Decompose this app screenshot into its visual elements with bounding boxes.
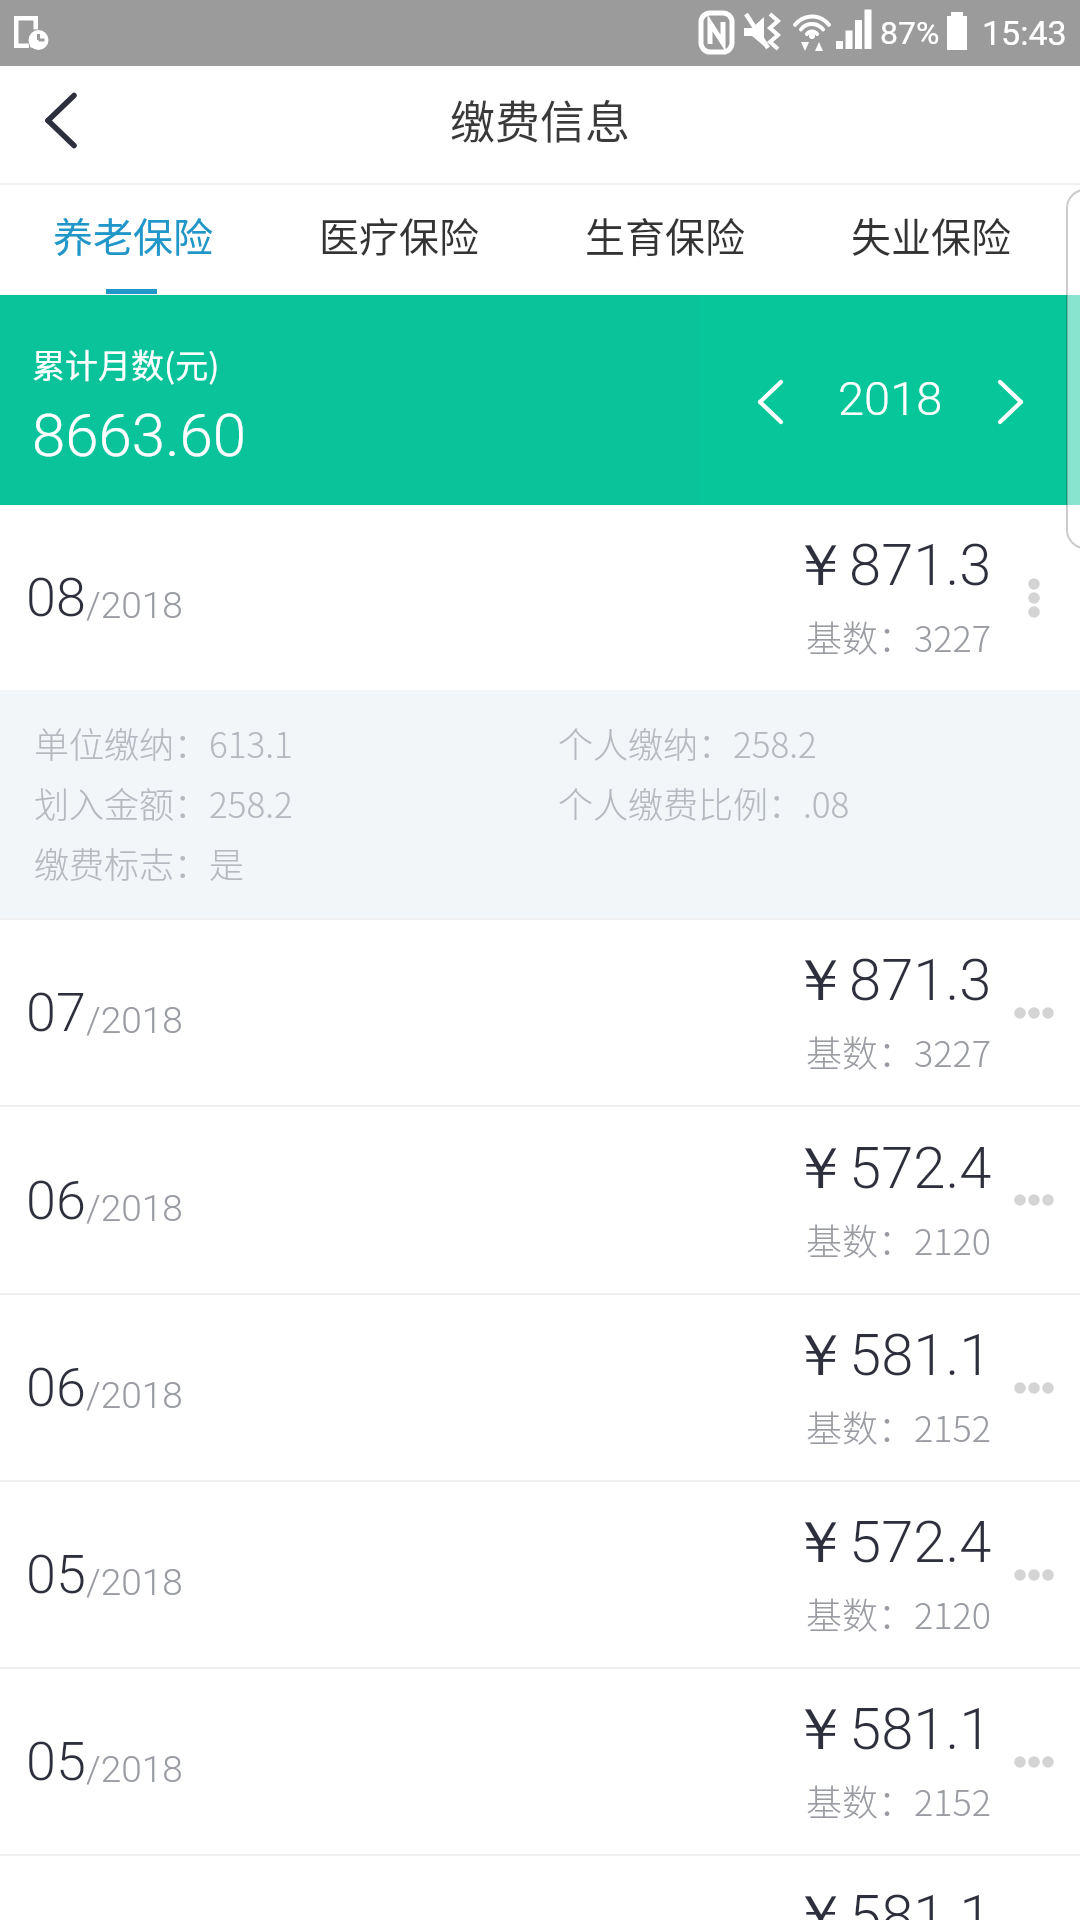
staticText: 05 [26, 1730, 86, 1793]
staticText: 基数：2152 [806, 1400, 992, 1452]
staticText: 基数：3227 [806, 610, 992, 662]
staticText: 8663.60 [32, 400, 247, 470]
staticText: ￥581.1 [791, 1880, 992, 1920]
staticText: 07 [26, 981, 86, 1044]
button[interactable]: More options [1001, 1167, 1067, 1233]
staticText: ￥581.1 [791, 1693, 992, 1766]
button[interactable]: 生育保险 [532, 185, 798, 295]
staticText: /2018 [86, 1374, 183, 1417]
staticText: /2018 [86, 1561, 183, 1604]
button[interactable]: 07 [0, 920, 1080, 1105]
staticText: 基数：3227 [806, 1025, 992, 1077]
staticText: 个人缴纳：258.2 [558, 717, 817, 768]
staticText: ￥871.3 [791, 529, 992, 602]
staticText: 生育保险 [585, 206, 745, 264]
button[interactable]: 05 [0, 1856, 1080, 1920]
staticText: 08 [26, 566, 86, 629]
staticText: 基数：2120 [806, 1213, 992, 1265]
staticText: 06 [26, 1356, 86, 1419]
staticText: 医疗保险 [319, 206, 479, 264]
button[interactable]: 06 [0, 1107, 1080, 1293]
button[interactable]: More options [1001, 1542, 1067, 1608]
button[interactable]: More options [1001, 1729, 1067, 1795]
staticText: ￥572.4 [791, 1132, 992, 1205]
button[interactable]: 医疗保险 [266, 185, 532, 295]
button[interactable]: 05 [0, 1669, 1080, 1854]
staticText: /2018 [86, 1187, 183, 1230]
staticText: 养老保险 [53, 206, 213, 264]
staticText: 累计月数(元) [32, 340, 220, 388]
button[interactable]: More options [1001, 565, 1067, 631]
staticText: 个人缴费比例：.08 [558, 777, 850, 828]
staticText: /2018 [86, 999, 183, 1042]
staticText: 缴费信息 [450, 87, 631, 152]
button[interactable]: Back [0, 66, 124, 183]
staticText: 05 [26, 1543, 86, 1606]
button[interactable]: More options [1001, 1355, 1067, 1421]
staticText: 失业保险 [851, 206, 1011, 264]
staticText: ￥572.4 [791, 1506, 992, 1579]
staticText: 划入金额：258.2 [34, 777, 293, 828]
staticText: 基数：2152 [806, 1774, 992, 1826]
staticText: 单位缴纳：613.1 [34, 717, 293, 768]
staticText: 缴费标志：是 [34, 837, 245, 888]
staticText: ￥581.1 [791, 1319, 992, 1392]
staticText: /2018 [86, 1748, 183, 1791]
staticText: ￥871.3 [791, 944, 992, 1017]
button[interactable]: Previous year [736, 367, 806, 437]
staticText: 06 [26, 1169, 86, 1232]
button[interactable]: 失业保险 [798, 185, 1064, 295]
button[interactable]: 05 [0, 1482, 1080, 1667]
button[interactable]: 06 [0, 1295, 1080, 1480]
button[interactable]: 养老保险 [0, 185, 266, 295]
staticText: 基数：2120 [806, 1587, 992, 1639]
staticText: 2018 [838, 371, 943, 426]
button[interactable]: More options [1001, 980, 1067, 1046]
staticText: /2018 [86, 584, 183, 627]
button[interactable]: 08 [0, 505, 1080, 690]
button[interactable]: Next year [976, 367, 1046, 437]
staticText: 15:43 [982, 13, 1067, 53]
staticText: 87% [880, 14, 940, 52]
